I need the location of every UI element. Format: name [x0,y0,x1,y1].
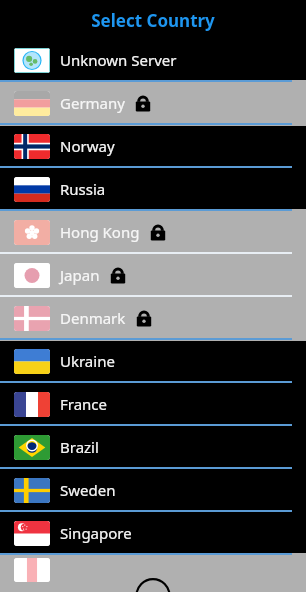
staticText: Singapore [60,523,132,543]
button[interactable]: Russia [0,169,306,209]
other: Locked [134,308,154,328]
staticText: Germany [60,93,125,113]
other: Locked [148,222,168,242]
staticText: Hong Kong [60,222,140,242]
staticText: France [60,394,108,414]
staticText: Denmark [60,308,126,328]
button[interactable]: France [0,384,306,424]
staticText: Select Country [91,9,215,32]
button[interactable]: Germany [0,83,306,123]
button[interactable]: Hong Kong [0,212,306,252]
staticText: Russia [60,179,106,199]
button[interactable]: Denmark [0,298,306,338]
other: Locked [108,265,128,285]
button[interactable]: Norway [0,126,306,166]
button[interactable]: Singapore [0,513,306,553]
staticText: Japan [60,265,100,285]
staticText: Brazil [60,437,99,457]
button[interactable]: Japan [0,255,306,295]
staticText: Ukraine [60,351,115,371]
staticText: Sweden [60,480,116,500]
button[interactable]: Unknown Server [0,40,306,80]
staticText: Unknown Server [60,50,177,70]
button[interactable]: Brazil [0,427,306,467]
staticText: Norway [60,136,115,156]
button[interactable]: Sweden [0,470,306,510]
button[interactable]: Ukraine [0,341,306,381]
other: Locked [133,93,153,113]
button[interactable] [0,556,306,592]
